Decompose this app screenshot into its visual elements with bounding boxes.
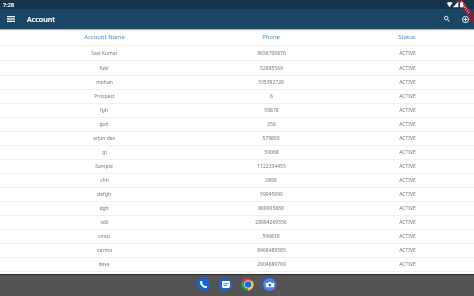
button[interactable]: goh <box>0 118 474 132</box>
button[interactable]: Account Name <box>0 29 474 46</box>
staticText: ACTIVE <box>399 149 416 156</box>
staticText: defgh <box>97 191 111 198</box>
button[interactable]: defgh <box>0 188 474 202</box>
button[interactable]: Camera <box>263 278 276 291</box>
button[interactable]: gi <box>0 146 474 160</box>
button[interactable]: Add account <box>459 13 471 25</box>
staticText: 869905868 <box>258 205 284 212</box>
button[interactable]: mohan <box>0 76 474 90</box>
staticText: 59945990 <box>260 191 283 198</box>
staticText: 556839 <box>262 233 280 240</box>
staticText: ACTIVE <box>399 261 416 268</box>
staticText: 258 <box>267 121 276 128</box>
staticText: ACTIVE <box>399 79 416 86</box>
staticText: arjun dev <box>93 135 115 142</box>
staticText: 9656709876 <box>257 50 286 57</box>
staticText: ACTIVE <box>399 65 416 72</box>
button[interactable]: Chrome <box>241 278 254 291</box>
staticText: ACTIVE <box>399 205 416 212</box>
staticText: 52885569 <box>260 65 283 72</box>
staticText: 579800 <box>262 135 280 142</box>
staticText: Account Name <box>84 33 125 41</box>
button[interactable]: Open navigation menu <box>4 12 18 26</box>
button[interactable]: chh <box>0 174 474 188</box>
staticText: Sasi Kumar <box>91 50 118 57</box>
button[interactable]: dgh <box>0 202 474 216</box>
staticText: ACTIVE <box>399 219 416 226</box>
button[interactable]: arjun dev <box>0 132 474 146</box>
staticText: ACTIVE <box>399 50 416 57</box>
staticText: ACTIVE <box>399 247 416 254</box>
staticText: 535392728 <box>258 79 284 86</box>
staticText: ACTIVE <box>399 121 416 128</box>
button[interactable]: fubi <box>0 61 474 76</box>
staticText: fubi <box>99 65 109 72</box>
staticText: varma <box>97 247 112 254</box>
button[interactable]: Messages <box>219 278 232 291</box>
button[interactable]: varma <box>0 244 474 258</box>
staticText: 8468489585 <box>257 247 286 254</box>
staticText: mohan <box>96 79 113 86</box>
button[interactable]: Prospect <box>0 90 474 104</box>
staticText: 28994269556 <box>255 219 287 226</box>
staticText: 7:28 <box>3 1 15 9</box>
staticText: goh <box>99 121 109 128</box>
staticText: fgh <box>100 107 108 114</box>
staticText: ACTIVE <box>399 191 416 198</box>
staticText: 59878 <box>264 107 279 114</box>
staticText: ACTIVE <box>399 177 416 184</box>
staticText: Sample <box>95 163 113 170</box>
button[interactable]: cnou <box>0 230 474 244</box>
staticText: 2904889789 <box>257 261 286 268</box>
staticText: ACTIVE <box>399 107 416 114</box>
staticText: dgh <box>99 205 109 212</box>
staticText: 1122334455 <box>257 163 286 170</box>
button[interactable]: Sasi Kumar <box>0 46 474 61</box>
staticText: ACTIVE <box>399 135 416 142</box>
button[interactable]: sdii <box>0 216 474 230</box>
button[interactable]: Phone <box>197 278 210 291</box>
staticText: ACTIVE <box>399 163 416 170</box>
staticText: 59068 <box>264 149 279 156</box>
staticText: deva <box>98 261 110 268</box>
staticText: Phone <box>262 33 280 41</box>
staticText: chh <box>100 177 109 184</box>
staticText: 6 <box>270 93 273 100</box>
button[interactable]: Sample <box>0 160 474 174</box>
button[interactable]: fgh <box>0 104 474 118</box>
staticText: Prospect <box>94 93 115 100</box>
staticText: sdii <box>100 219 109 226</box>
staticText: ACTIVE <box>399 233 416 240</box>
staticText: gi <box>102 149 107 156</box>
button[interactable]: Search <box>441 13 453 25</box>
staticText: Account <box>27 14 55 24</box>
staticText: ACTIVE <box>399 93 416 100</box>
staticText: cnou <box>98 233 110 240</box>
staticText: 2899 <box>265 177 277 184</box>
button[interactable]: deva <box>0 258 474 272</box>
staticText: Status <box>398 33 416 41</box>
